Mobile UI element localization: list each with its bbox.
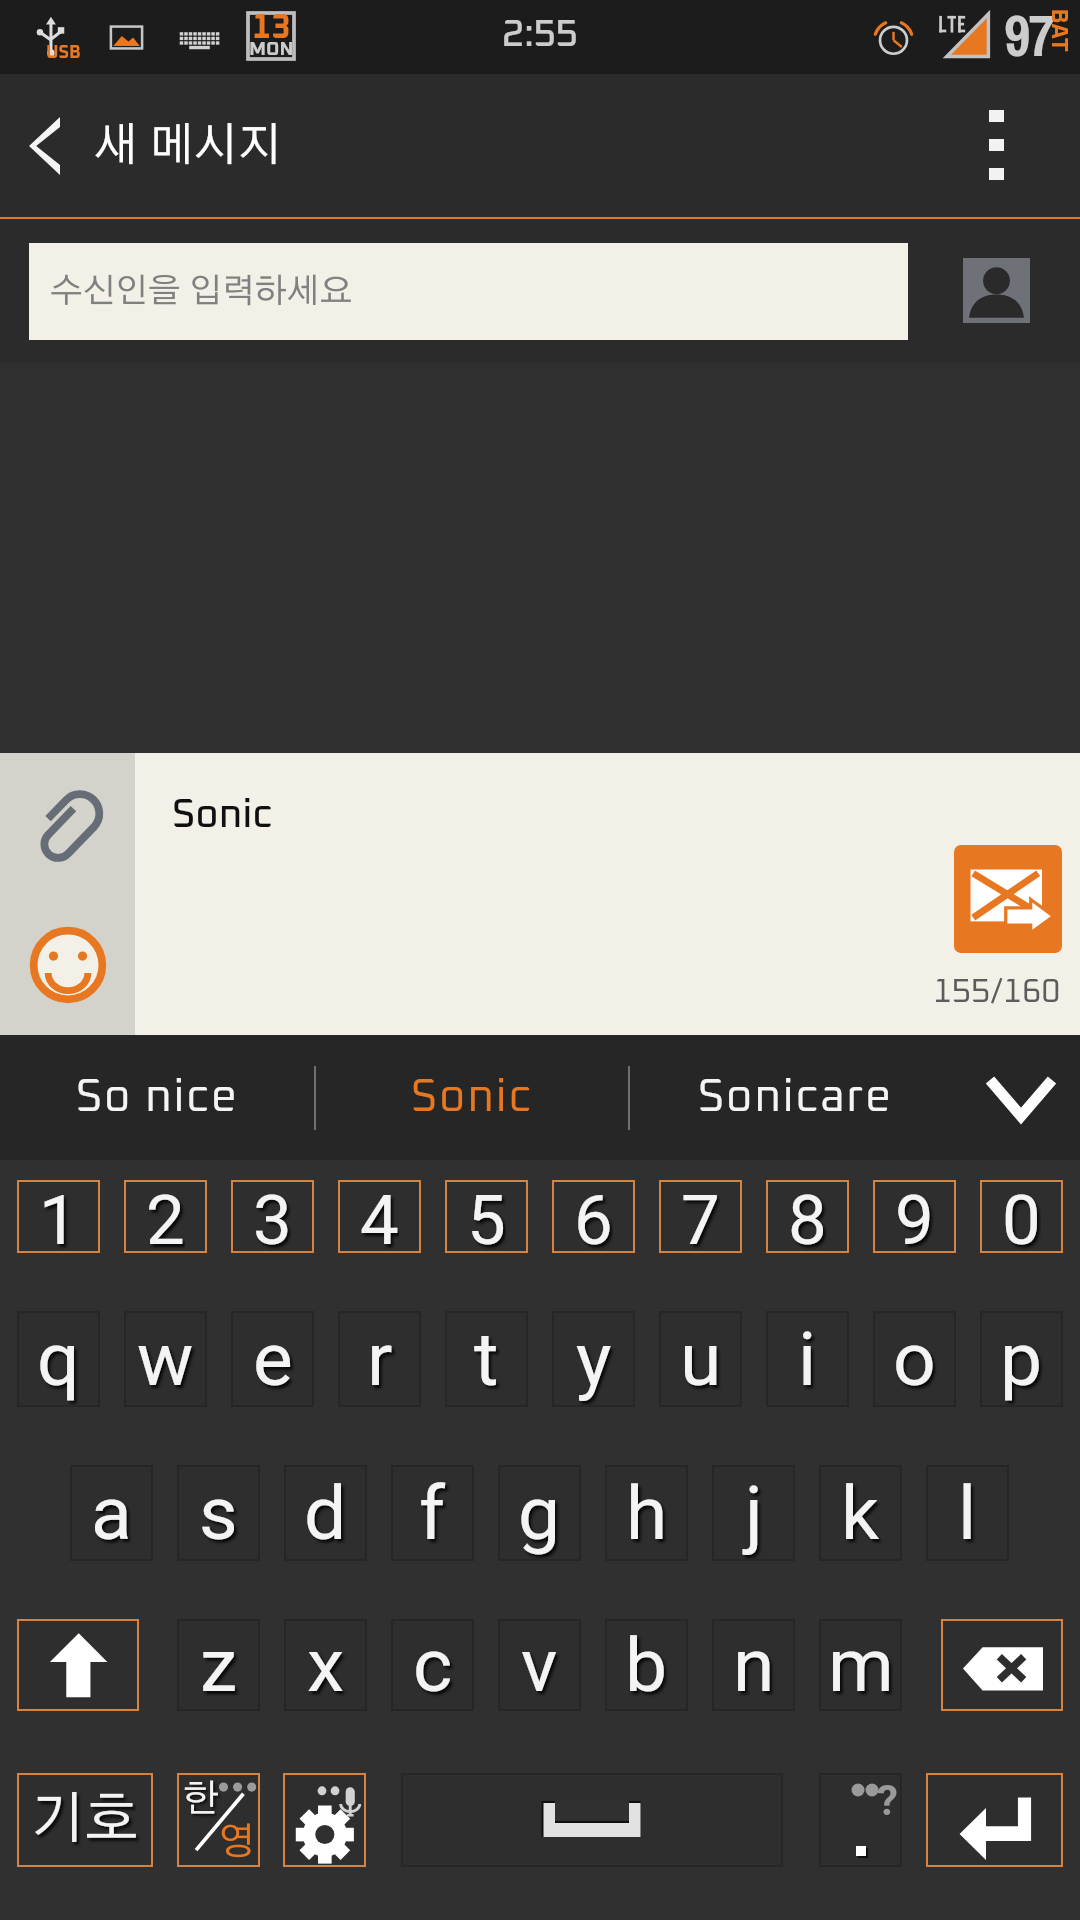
staticText: w	[137, 1315, 194, 1403]
button[interactable]: l	[926, 1465, 1009, 1561]
staticText: 기호	[31, 1792, 139, 1848]
staticText: 2:55	[502, 16, 578, 54]
button[interactable]: e	[231, 1311, 314, 1407]
staticText: j	[745, 1469, 763, 1557]
button[interactable]: f	[391, 1465, 474, 1561]
staticText: p	[1000, 1315, 1043, 1403]
button[interactable]: Back	[0, 74, 89, 217]
staticText: 5	[467, 1180, 506, 1253]
button[interactable]: More options	[950, 74, 1042, 216]
staticText: Sonic	[172, 795, 273, 835]
button[interactable]: m	[819, 1619, 902, 1711]
staticText: BAT	[1046, 8, 1069, 52]
staticText: y	[576, 1315, 612, 1403]
button[interactable]: q	[17, 1311, 100, 1407]
button[interactable]: h	[605, 1465, 688, 1561]
button[interactable]: p	[980, 1311, 1063, 1407]
staticText: b	[625, 1621, 668, 1709]
button[interactable]: Send message	[954, 845, 1062, 953]
button[interactable]: 3	[231, 1180, 314, 1253]
staticText: v	[521, 1621, 558, 1709]
button[interactable]: 4	[338, 1180, 421, 1253]
button[interactable]: So nice	[0, 1035, 314, 1160]
button[interactable]: Enter	[926, 1773, 1063, 1867]
button[interactable]: w	[124, 1311, 207, 1407]
staticText: h	[626, 1469, 668, 1557]
staticText: g	[518, 1469, 561, 1557]
staticText: i	[798, 1315, 817, 1403]
button[interactable]: 수신인을 입력하세요	[29, 243, 908, 340]
staticText: So nice	[76, 1075, 239, 1120]
staticText: 7	[681, 1180, 720, 1253]
staticText: 2	[146, 1180, 185, 1253]
button[interactable]: Sonic	[316, 1035, 628, 1160]
staticText: m	[828, 1621, 894, 1709]
staticText: d	[304, 1469, 347, 1557]
staticText: k	[841, 1469, 880, 1557]
staticText: 8	[788, 1180, 827, 1253]
button[interactable]: j	[712, 1465, 795, 1561]
staticText: 1	[39, 1180, 78, 1253]
staticText: 3	[253, 1180, 292, 1253]
staticText: 6	[574, 1180, 613, 1253]
button[interactable]: v	[498, 1619, 581, 1711]
button[interactable]: Expand suggestions	[962, 1035, 1080, 1160]
staticText: l	[958, 1469, 977, 1557]
staticText: q	[37, 1315, 80, 1403]
button[interactable]: 2	[124, 1180, 207, 1253]
button[interactable]: Switch Korean English	[177, 1773, 260, 1867]
staticText: n	[733, 1621, 775, 1709]
button[interactable]: n	[712, 1619, 795, 1711]
staticText: 13	[252, 12, 291, 45]
staticText: 수신인을 입력하세요	[50, 275, 353, 309]
button[interactable]: a	[70, 1465, 153, 1561]
button[interactable]: 기호	[17, 1773, 153, 1867]
button[interactable]: 0	[980, 1180, 1063, 1253]
button[interactable]: 7	[659, 1180, 742, 1253]
staticText: 9	[895, 1180, 934, 1253]
button[interactable]: x	[284, 1619, 367, 1711]
button[interactable]: u	[659, 1311, 742, 1407]
button[interactable]: 1	[17, 1180, 100, 1253]
staticText: ?	[877, 1776, 898, 1825]
button[interactable]: Attach file	[0, 753, 135, 894]
button[interactable]: k	[819, 1465, 902, 1561]
staticText: 영	[218, 1824, 255, 1862]
staticText: e	[253, 1315, 293, 1403]
staticText: o	[893, 1315, 936, 1403]
button[interactable]: o	[873, 1311, 956, 1407]
button[interactable]: Sonicare	[630, 1035, 962, 1160]
button[interactable]: c	[391, 1619, 474, 1711]
button[interactable]: y	[552, 1311, 635, 1407]
button[interactable]: Backspace	[941, 1619, 1063, 1711]
button[interactable]: 8	[766, 1180, 849, 1253]
staticText: Sonic	[411, 1075, 534, 1120]
button[interactable]: g	[498, 1465, 581, 1561]
staticText: z	[200, 1621, 238, 1709]
button[interactable]: Shift	[17, 1619, 139, 1711]
button[interactable]: d	[284, 1465, 367, 1561]
staticText: Sonicare	[698, 1075, 894, 1120]
button[interactable]: i	[766, 1311, 849, 1407]
button[interactable]: Settings	[283, 1773, 366, 1867]
staticText: s	[199, 1469, 238, 1557]
button[interactable]: s	[177, 1465, 260, 1561]
staticText: u	[680, 1315, 722, 1403]
button[interactable]: t	[445, 1311, 528, 1407]
button[interactable]: 6	[552, 1180, 635, 1253]
button[interactable]: 9	[873, 1180, 956, 1253]
button[interactable]: Add contact	[963, 258, 1030, 323]
button[interactable]: z	[177, 1619, 260, 1711]
button[interactable]: Punctuation	[819, 1773, 902, 1867]
staticText: 155/160	[933, 976, 1061, 1009]
button[interactable]: r	[338, 1311, 421, 1407]
staticText: t	[474, 1315, 499, 1403]
button[interactable]: Insert emoticon	[0, 894, 135, 1035]
staticText: x	[307, 1621, 345, 1709]
button[interactable]: 5	[445, 1180, 528, 1253]
staticText: USB	[46, 44, 81, 62]
button[interactable]: Space	[401, 1773, 783, 1867]
button[interactable]: b	[605, 1619, 688, 1711]
staticText: 0	[1002, 1180, 1041, 1253]
staticText: 한	[183, 1781, 220, 1819]
